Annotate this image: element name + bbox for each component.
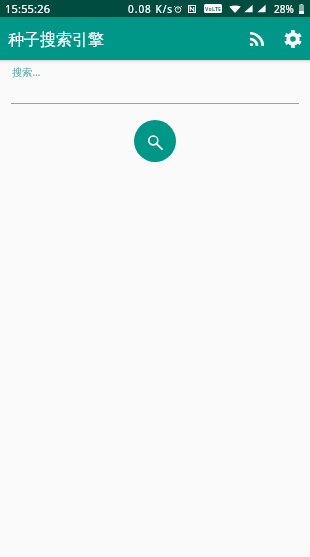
- staticText: VoLTE: [205, 5, 222, 12]
- staticText: 15:55:26: [5, 1, 51, 16]
- button[interactable]: RSS feed: [238, 17, 275, 60]
- staticText: 种子搜索引擎: [8, 30, 104, 50]
- button[interactable]: Settings: [275, 17, 310, 60]
- staticText: 0.08 K/s: [128, 2, 174, 16]
- button[interactable]: Search: [134, 120, 176, 162]
- staticText: 搜索...: [12, 65, 41, 79]
- staticText: 28%: [274, 2, 294, 16]
